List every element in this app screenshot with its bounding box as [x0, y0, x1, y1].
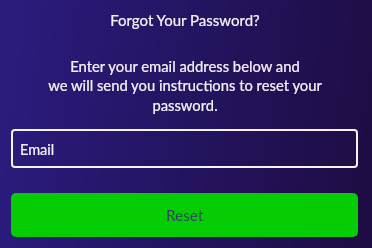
- button[interactable]: Email: [11, 129, 358, 168]
- staticText: Reset: [166, 206, 204, 224]
- button[interactable]: Reset: [11, 193, 358, 237]
- staticText: Forgot Your Password?: [110, 11, 260, 29]
- staticText: Email: [20, 141, 55, 158]
- staticText: Enter your email address below and we wi…: [48, 57, 322, 114]
